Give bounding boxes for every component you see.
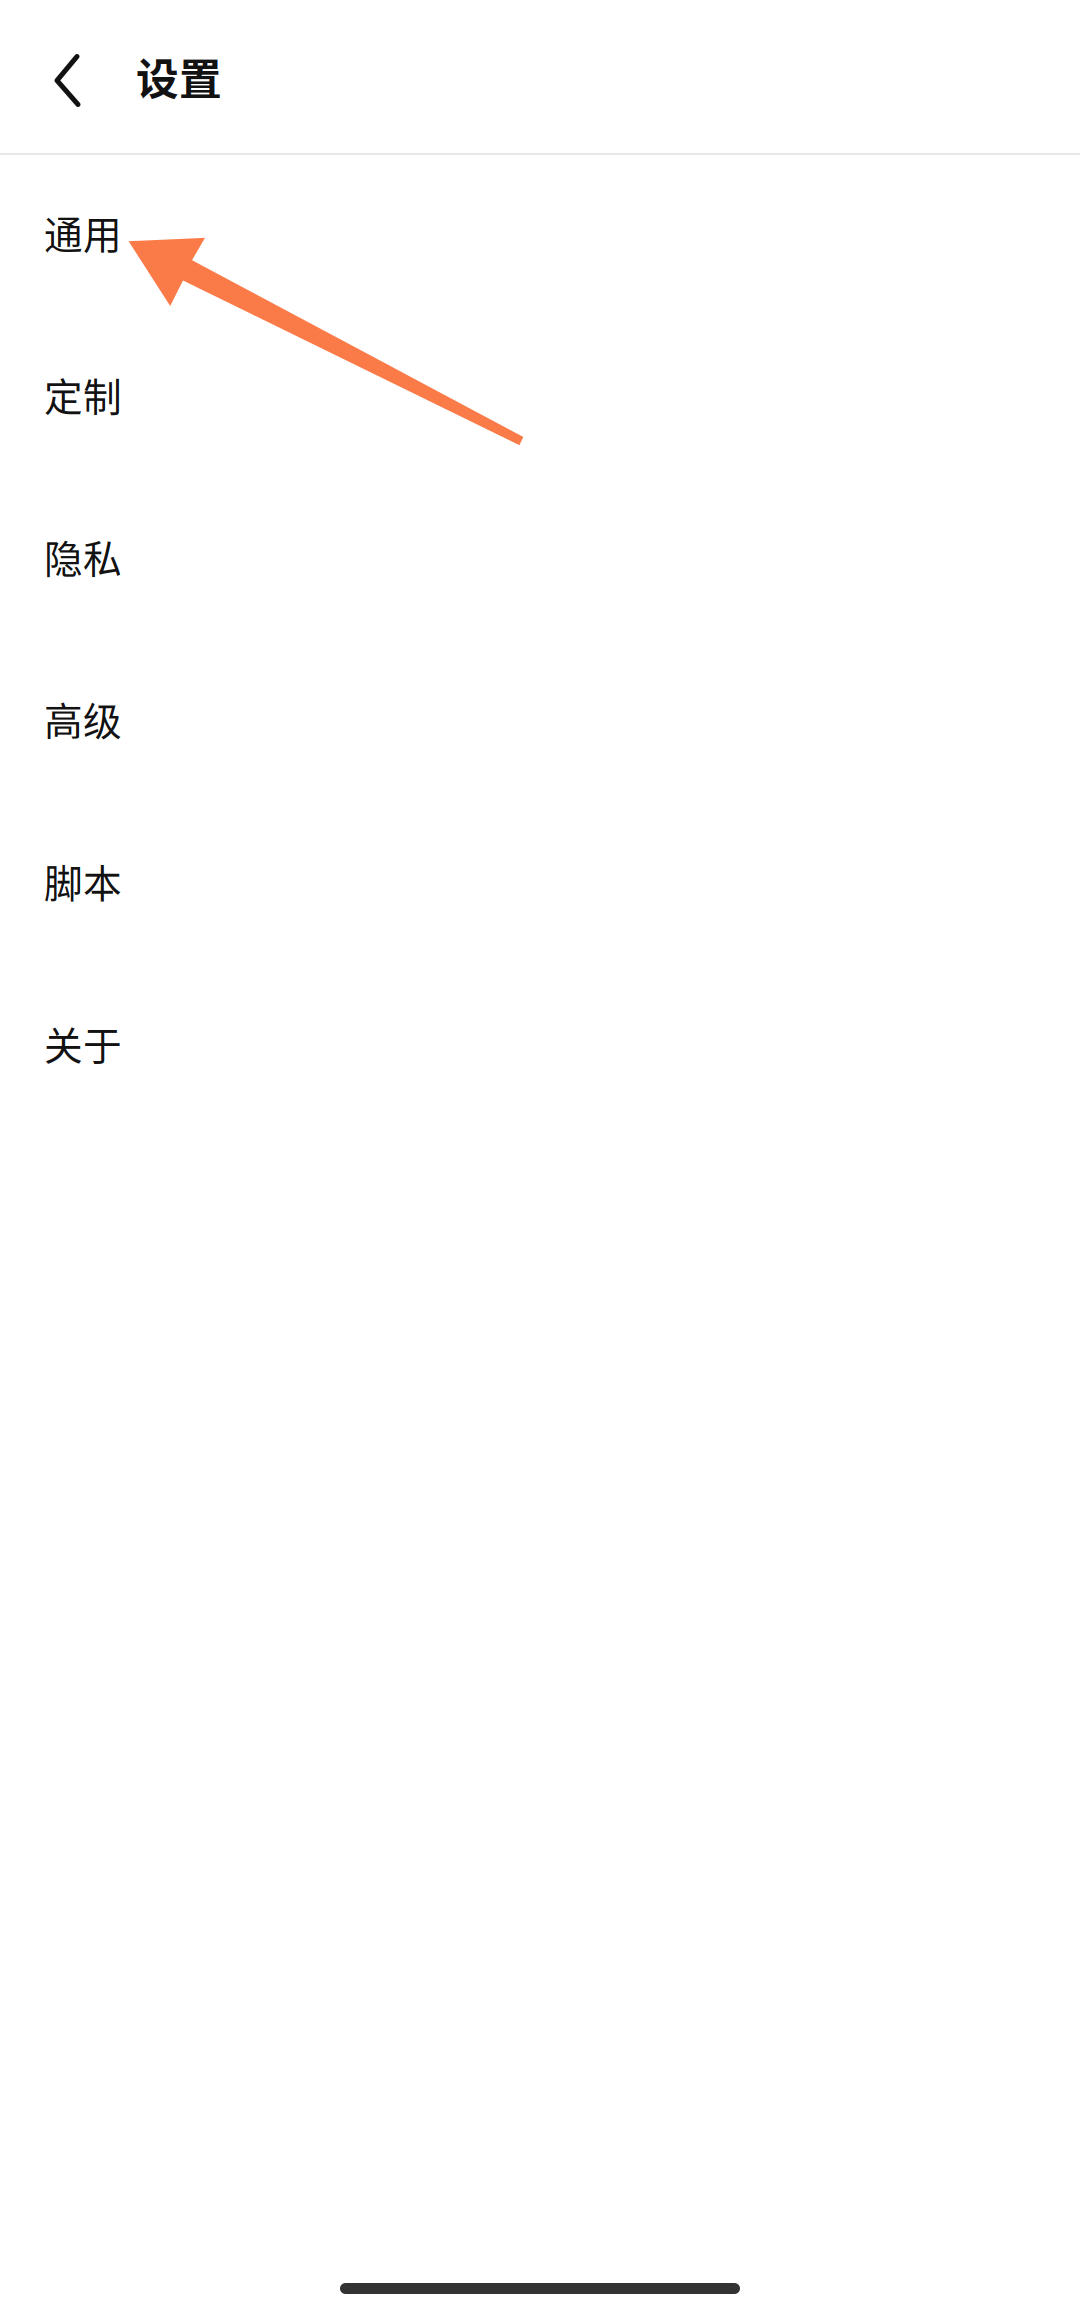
staticText: 设置 [136,46,222,107]
staticText: 脚本 [44,853,122,909]
button[interactable]: 隐私 [0,475,1080,638]
button[interactable]: 高级 [0,638,1080,800]
button[interactable]: 脚本 [0,800,1080,962]
staticText: 定制 [44,366,122,422]
staticText: 通用 [44,204,122,260]
staticText: 高级 [44,691,122,747]
staticText: 隐私 [44,528,122,584]
button[interactable]: 通用 [0,151,1080,313]
staticText: 关于 [44,1015,122,1071]
button[interactable]: 关于 [0,962,1080,1124]
button[interactable]: Back [0,0,135,153]
button[interactable]: 定制 [0,313,1080,475]
